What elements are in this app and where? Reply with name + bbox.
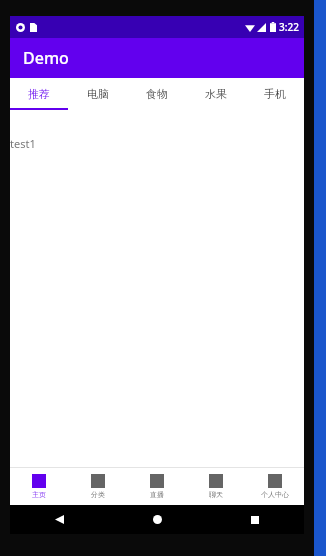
staticText: Demo: [23, 47, 69, 69]
button[interactable]: 推荐: [10, 78, 68, 110]
staticText: 电脑: [87, 87, 109, 101]
button[interactable]: 电脑: [68, 78, 127, 110]
staticText: 3:22: [279, 20, 299, 34]
button[interactable]: 直播: [127, 468, 186, 505]
button[interactable]: 聊天: [186, 468, 245, 505]
button[interactable]: 手机: [245, 78, 304, 110]
staticText: 主页: [32, 490, 46, 499]
button[interactable]: Home: [108, 505, 206, 534]
staticText: 分类: [91, 490, 105, 499]
staticText: 直播: [150, 490, 164, 499]
button[interactable]: 个人中心: [245, 468, 304, 505]
button[interactable]: 分类: [68, 468, 127, 505]
staticText: 聊天: [209, 490, 223, 499]
button[interactable]: Back: [10, 505, 108, 534]
staticText: test1: [10, 136, 36, 151]
button[interactable]: 水果: [186, 78, 245, 110]
staticText: 食物: [146, 87, 168, 101]
staticText: 个人中心: [261, 490, 289, 499]
staticText: 水果: [205, 87, 227, 101]
button[interactable]: 主页: [10, 468, 68, 505]
button[interactable]: 食物: [127, 78, 186, 110]
button[interactable]: Recent apps: [206, 505, 304, 534]
staticText: 推荐: [28, 87, 50, 101]
staticText: 手机: [264, 87, 286, 101]
